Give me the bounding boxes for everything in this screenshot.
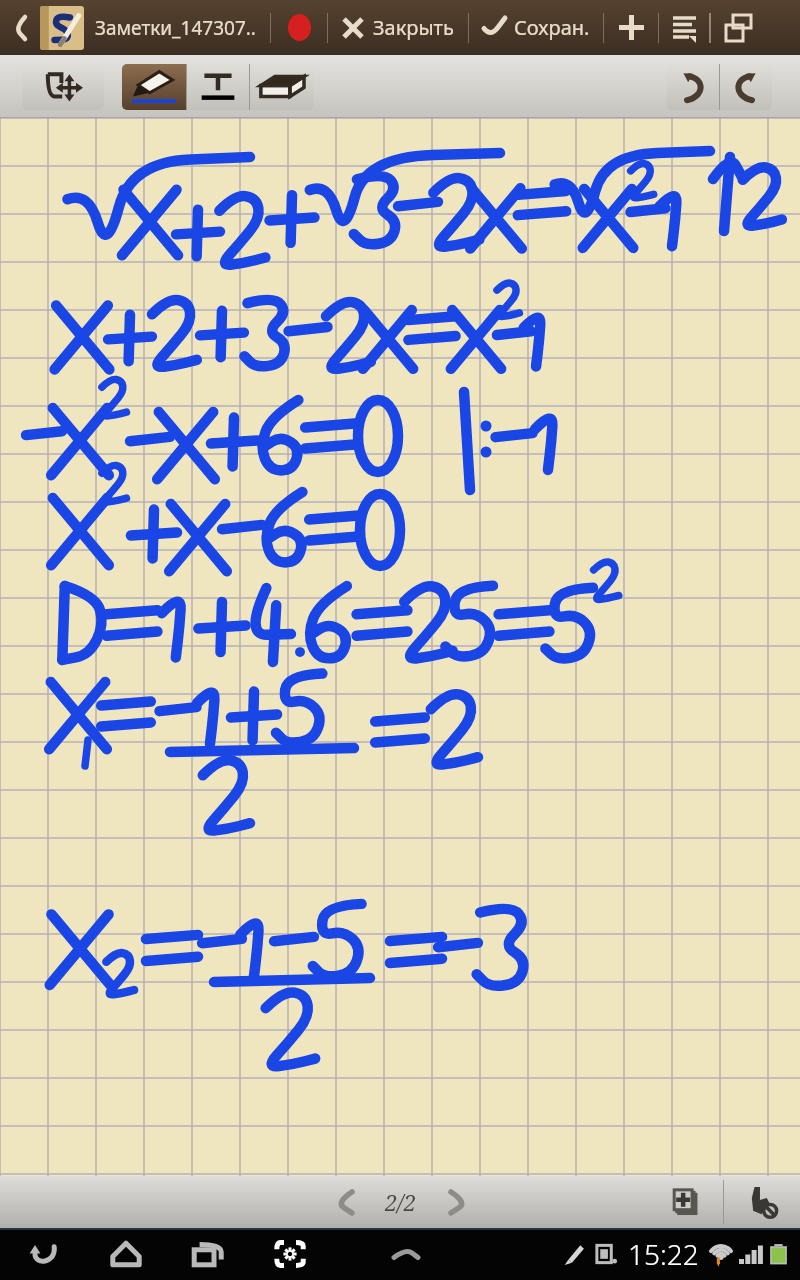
button[interactable] (40, 6, 84, 50)
button[interactable]: Back (0, 0, 40, 55)
staticText: 15:22 (628, 1235, 699, 1273)
button[interactable]: Undo (667, 64, 719, 110)
button[interactable]: Windows (711, 0, 767, 55)
button[interactable]: Home (104, 1232, 148, 1276)
button[interactable]: Disable touch (724, 1176, 800, 1228)
button[interactable]: Expand (384, 1232, 428, 1276)
button[interactable]: Select (22, 64, 104, 110)
button[interactable]: Pen (122, 64, 186, 110)
staticText: 2/2 (385, 1187, 416, 1217)
button[interactable] (0, 118, 800, 1176)
button[interactable]: Redo (720, 64, 772, 110)
button[interactable]: Next page (432, 1176, 484, 1228)
button[interactable]: Закрыть (342, 0, 454, 55)
button[interactable]: Screenshot (268, 1232, 312, 1276)
button[interactable]: Record (271, 0, 327, 55)
button[interactable]: Recents (186, 1232, 230, 1276)
staticText: Закрыть (373, 14, 454, 41)
button[interactable]: Add (604, 0, 658, 55)
button[interactable]: Add page (651, 1176, 723, 1228)
button[interactable]: Text (187, 64, 249, 110)
button[interactable]: Back (22, 1232, 66, 1276)
staticText: Сохран. (514, 14, 590, 41)
button[interactable]: Menu (659, 0, 709, 55)
button[interactable]: Сохран. (482, 0, 590, 55)
staticText: Заметки_147307.. (95, 15, 256, 41)
button[interactable]: Eraser (250, 64, 314, 110)
button[interactable]: Previous page (317, 1176, 369, 1228)
